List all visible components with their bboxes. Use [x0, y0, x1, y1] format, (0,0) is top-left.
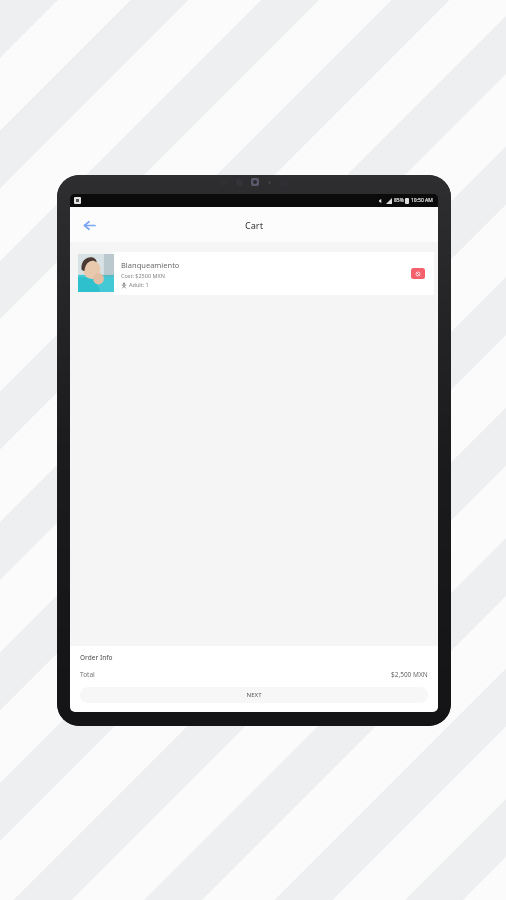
- staticText: Cost: $2500 MXN: [121, 272, 165, 279]
- staticText: Cart: [245, 219, 264, 231]
- staticText: $2,500 MXN: [391, 670, 428, 679]
- staticText: Blanqueamiento: [121, 260, 180, 270]
- button[interactable]: NEXT: [80, 687, 428, 703]
- staticText: Order Info: [80, 653, 113, 662]
- staticText: 85%: [394, 197, 404, 204]
- button[interactable]: Back: [78, 214, 100, 236]
- button[interactable]: Delete item: [411, 268, 425, 279]
- staticText: NEXT: [246, 691, 262, 699]
- staticText: Total: [80, 670, 95, 679]
- staticText: 10:50 AM: [411, 197, 433, 204]
- button[interactable]: Blanqueamiento: [113, 252, 434, 295]
- staticText: Adult: 1: [129, 281, 149, 288]
